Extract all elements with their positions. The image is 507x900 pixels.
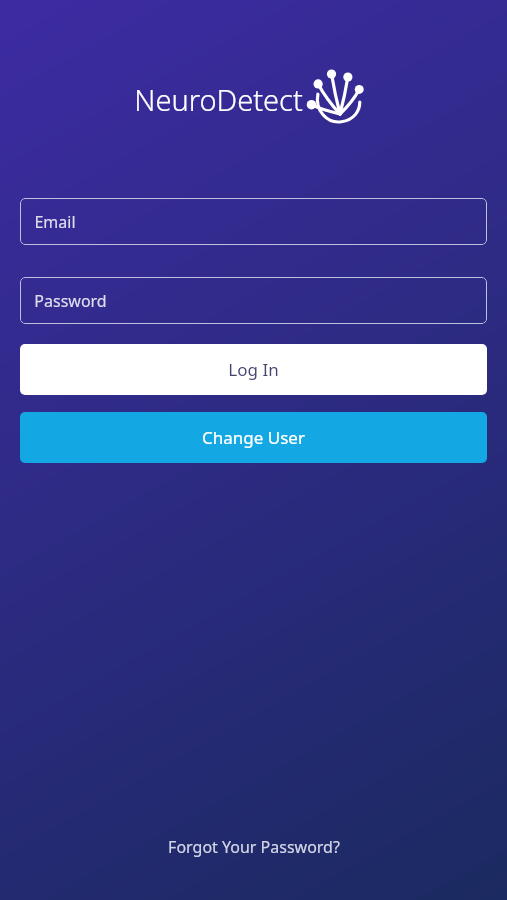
button[interactable]: Password xyxy=(20,277,487,324)
button[interactable]: Change User xyxy=(20,412,487,463)
staticText: Log In xyxy=(228,358,279,381)
other: NeuroDetect logo xyxy=(307,66,373,126)
staticText: NeuroDetect xyxy=(134,80,303,119)
button[interactable]: Log In xyxy=(20,344,487,395)
staticText: Email xyxy=(34,211,76,233)
button[interactable]: Email xyxy=(20,198,487,245)
button[interactable]: Forgot Your Password? xyxy=(0,824,507,870)
staticText: Forgot Your Password? xyxy=(168,836,340,858)
staticText: Change User xyxy=(202,426,305,449)
staticText: Password xyxy=(34,290,107,312)
